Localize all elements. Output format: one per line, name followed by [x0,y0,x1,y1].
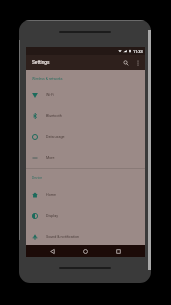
staticText: Bluetooth [46,114,62,118]
button[interactable]: Sound & notification [26,226,145,247]
button[interactable]: Recents [112,245,125,257]
staticText: Display [46,214,58,218]
button[interactable]: More [26,147,145,168]
staticText: Wireless & networks [32,77,63,81]
button[interactable]: Home [26,184,145,205]
staticText: Data usage [46,135,65,139]
staticText: Settings [32,60,50,66]
staticText: 11:33 [133,49,143,54]
button[interactable]: Wi-Fi [26,84,145,105]
button[interactable]: Data usage [26,126,145,147]
staticText: Device [32,176,43,180]
button[interactable]: Search [119,56,132,69]
staticText: More [46,156,55,160]
staticText: Wi-Fi [46,93,55,97]
button[interactable]: More options [132,57,143,68]
staticText: Home [46,193,56,197]
button[interactable]: Back [46,245,59,257]
button[interactable]: Home [79,245,92,257]
button[interactable]: Display [26,205,145,226]
staticText: Sound & notification [46,235,80,239]
button[interactable]: Bluetooth [26,105,145,126]
